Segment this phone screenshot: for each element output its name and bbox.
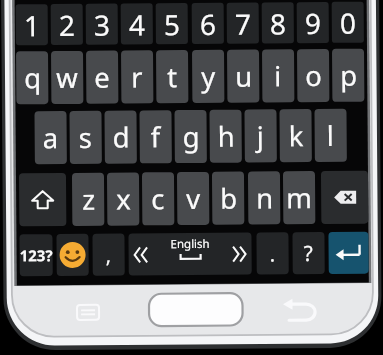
staticText: r <box>131 58 143 95</box>
staticText: 123? <box>19 245 53 265</box>
staticText: 9 <box>305 4 322 42</box>
button[interactable]: 6 <box>192 3 224 44</box>
staticText: b <box>220 180 237 217</box>
button[interactable]: r <box>121 50 153 103</box>
button[interactable]: o <box>297 49 329 102</box>
button[interactable]: h <box>209 110 242 163</box>
staticText: 0 <box>340 4 357 42</box>
button[interactable]: v <box>177 172 209 225</box>
staticText: 7 <box>235 4 252 43</box>
staticText: d <box>112 118 130 156</box>
button[interactable]: g <box>174 110 207 163</box>
button[interactable]: 2 <box>51 4 83 45</box>
staticText: ? <box>303 239 314 268</box>
button[interactable]: l <box>314 109 347 162</box>
staticText: o <box>305 57 322 94</box>
staticText: q <box>24 59 41 96</box>
button[interactable]: i <box>262 49 294 102</box>
staticText: e <box>94 59 110 96</box>
staticText: 1 <box>24 6 41 44</box>
button[interactable]: 3 <box>86 4 118 45</box>
button[interactable]: y <box>192 50 224 103</box>
staticText: u <box>235 57 252 95</box>
button[interactable]: 9 <box>297 2 329 43</box>
button[interactable]: e <box>86 51 118 104</box>
button[interactable]: p <box>332 49 364 102</box>
staticText: y <box>201 58 216 95</box>
staticText: j <box>256 117 265 154</box>
button[interactable] <box>321 171 368 224</box>
staticText: 5 <box>164 5 181 43</box>
button[interactable]: 1 <box>16 4 48 45</box>
button[interactable]: t <box>156 50 188 103</box>
staticText: f <box>150 118 161 155</box>
button[interactable]: a <box>34 111 67 164</box>
button[interactable]: 123? <box>19 234 53 276</box>
button[interactable]: f <box>139 110 172 163</box>
staticText: 4 <box>129 5 146 43</box>
staticText: k <box>288 117 304 154</box>
staticText: English <box>170 236 211 252</box>
staticText: m <box>286 179 312 216</box>
button[interactable]: d <box>104 110 137 164</box>
staticText: p <box>340 57 357 94</box>
button[interactable]: n <box>248 171 280 224</box>
staticText: 6 <box>200 5 217 43</box>
staticText: z <box>82 181 95 218</box>
staticText: 2 <box>59 6 76 44</box>
button[interactable]: u <box>227 49 259 103</box>
staticText: . <box>269 240 276 267</box>
staticText: a <box>42 119 59 156</box>
staticText: x <box>116 180 131 218</box>
button[interactable]: 5 <box>156 3 188 44</box>
staticText: t <box>167 58 177 95</box>
button[interactable]: 0 <box>332 2 364 43</box>
button[interactable]: x <box>107 172 139 226</box>
button[interactable]: , <box>92 233 125 276</box>
button[interactable]: s <box>69 111 102 164</box>
button[interactable]: English <box>128 232 252 275</box>
button[interactable]: 4 <box>121 3 153 45</box>
button[interactable]: m <box>283 171 315 224</box>
button[interactable]: j <box>244 109 277 162</box>
button[interactable]: z <box>72 173 104 226</box>
staticText: i <box>274 57 282 94</box>
button[interactable]: ? <box>292 232 325 274</box>
staticText: c <box>151 180 165 217</box>
button[interactable] <box>56 234 89 276</box>
button[interactable] <box>19 173 66 226</box>
staticText: h <box>217 118 235 155</box>
button[interactable]: q <box>16 51 48 104</box>
staticText: 3 <box>94 6 111 44</box>
staticText: v <box>186 180 200 217</box>
staticText: , <box>105 242 112 269</box>
button[interactable]: b <box>212 172 244 225</box>
staticText: l <box>326 117 335 154</box>
staticText: n <box>256 179 273 216</box>
button[interactable]: 8 <box>262 2 294 43</box>
button[interactable]: k <box>279 109 312 162</box>
button[interactable]: c <box>142 172 174 225</box>
button[interactable] <box>328 232 369 274</box>
button[interactable]: . <box>256 232 289 274</box>
staticText: s <box>78 119 93 156</box>
staticText: w <box>56 59 78 96</box>
staticText: 8 <box>270 4 287 42</box>
staticText: g <box>182 118 200 155</box>
button[interactable]: 7 <box>227 2 259 44</box>
button[interactable]: w <box>51 51 83 104</box>
